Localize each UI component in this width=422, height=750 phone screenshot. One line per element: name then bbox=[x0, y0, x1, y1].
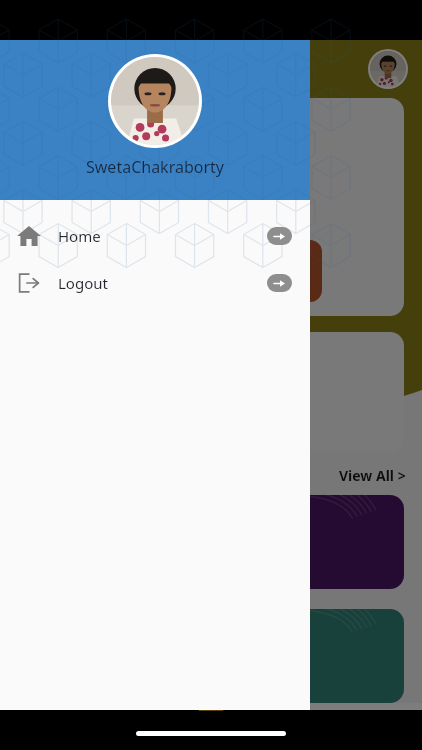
button[interactable]: Profile bbox=[370, 51, 406, 87]
button[interactable]: Outstanding bbox=[18, 98, 404, 316]
staticText: Uncleared bbox=[182, 250, 240, 266]
button[interactable]: Account 2 bbox=[18, 495, 404, 589]
button[interactable]: Uncleared bbox=[100, 240, 322, 302]
staticText: Outstanding bbox=[32, 112, 122, 132]
other: Logout bbox=[267, 274, 292, 292]
button[interactable]: Logout bbox=[0, 259, 310, 306]
staticText: 43567.74 bbox=[179, 175, 244, 195]
button[interactable]: Party Wise bbox=[18, 609, 404, 703]
button[interactable]: Home bbox=[0, 212, 310, 259]
staticText: SwetaChakraborty bbox=[86, 156, 224, 178]
staticText: Home bbox=[58, 226, 101, 246]
staticText: Logout bbox=[58, 273, 108, 293]
button[interactable]: Dispatch bbox=[18, 332, 404, 452]
other: Home bbox=[267, 227, 292, 245]
button[interactable]: View All > bbox=[339, 466, 406, 485]
